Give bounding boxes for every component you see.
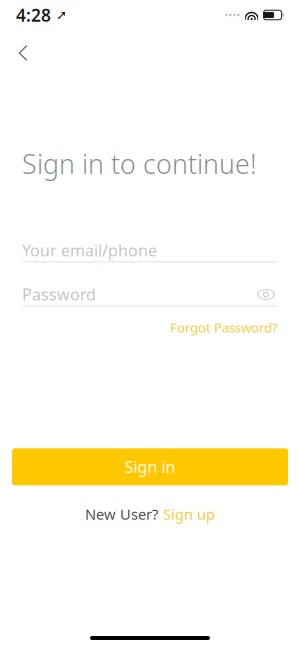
button[interactable]: Sign in [12,448,288,485]
staticText: 4:28 [16,3,51,26]
staticText: Sign in to continue! [22,146,257,181]
staticText: Sign up [163,504,215,524]
staticText: Your email/phone [22,240,157,261]
staticText: Password [22,284,96,305]
staticText: New User? [85,504,158,524]
button[interactable]: Forgot Password? [170,318,278,336]
button[interactable]: Show password [254,284,278,304]
button[interactable]: Back [6,38,40,68]
staticText: ➚ [51,7,67,22]
button[interactable]: Sign up [163,504,215,524]
staticText: Sign in [124,456,175,477]
staticText: Forgot Password? [170,318,278,336]
